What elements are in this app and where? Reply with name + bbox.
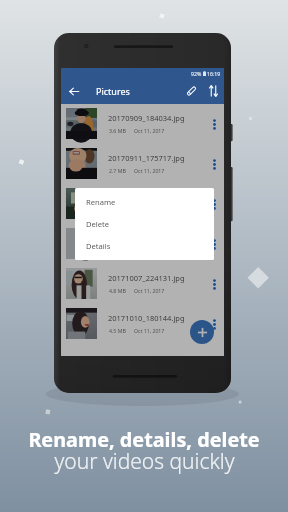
button[interactable]: More options (208, 224, 221, 264)
staticText: Delete (86, 219, 110, 229)
button[interactable]: Add (190, 320, 214, 344)
staticText: Oct 11, 2017 (134, 167, 165, 174)
staticText: 4.5 MB (109, 327, 126, 334)
button[interactable]: More options (208, 184, 221, 224)
staticText: 4.8 MB (109, 287, 126, 294)
button[interactable]: 20171010_180144.jpg (61, 304, 224, 344)
button[interactable]: More options (208, 144, 221, 184)
staticText: 3.6 MB (109, 127, 126, 134)
staticText: Details (86, 241, 111, 251)
button[interactable]: 20171002_093012.jpg (61, 224, 224, 264)
button[interactable]: Sort (204, 82, 222, 100)
button[interactable]: 20171007_224131.jpg (61, 264, 224, 304)
staticText: 3.2 MB (109, 247, 126, 254)
button[interactable]: Back (65, 82, 83, 100)
staticText: 20170909_184034.jpg (108, 113, 185, 123)
staticText: Oct 11, 2017 (134, 127, 165, 134)
button[interactable]: More options (208, 104, 221, 144)
button[interactable]: 20170914_121233.jpg (61, 184, 224, 224)
button[interactable]: More options (208, 304, 221, 344)
button[interactable]: 20170909_184034.jpg (61, 104, 224, 144)
staticText: your videos quickly (54, 447, 235, 476)
staticText: Rename, details, delete (28, 426, 260, 453)
staticText: 20170914_121233.jpg (108, 193, 185, 203)
staticText: 20171010_180144.jpg (108, 313, 185, 323)
staticText: 20170911_175717.jpg (108, 153, 185, 163)
staticText: Rename (86, 197, 116, 207)
button[interactable]: 20170911_175717.jpg (61, 144, 224, 184)
staticText: 16:19 (207, 70, 221, 77)
button[interactable]: Rename (182, 82, 200, 100)
staticText: Oct 11, 2017 (134, 327, 165, 334)
button[interactable]: Delete (75, 213, 214, 235)
staticText: 92% (191, 70, 202, 77)
staticText: Oct 11, 2017 (134, 287, 165, 294)
staticText: 2.7 MB (109, 167, 126, 174)
button[interactable]: Rename (75, 191, 214, 213)
button[interactable]: Details (75, 235, 214, 257)
button[interactable]: More options (208, 264, 221, 304)
staticText: 20171007_224131.jpg (108, 273, 185, 283)
staticText: Pictures (96, 85, 130, 97)
